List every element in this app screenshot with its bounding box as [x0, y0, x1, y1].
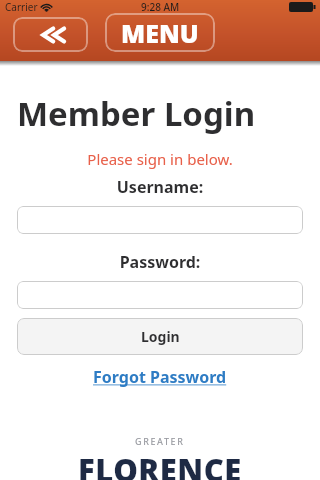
button[interactable]: Forgot Password [87, 364, 233, 390]
staticText: MENU [121, 16, 199, 50]
staticText: Login [141, 327, 180, 346]
staticText: GREATER [135, 435, 185, 447]
button[interactable]: Text field [17, 206, 303, 234]
button[interactable]: Text field [17, 281, 303, 309]
staticText: Username: [0, 176, 320, 198]
button[interactable]: Login [17, 318, 303, 355]
staticText: Password: [0, 251, 320, 273]
staticText: Member Login [17, 91, 256, 136]
staticText: Forgot Password [93, 366, 227, 388]
staticText: FLORENCE [78, 449, 242, 480]
staticText: Carrier [5, 0, 38, 14]
button[interactable]: MENU [105, 13, 215, 52]
button[interactable]: Back [13, 17, 88, 52]
staticText: 9:28 AM [141, 0, 180, 14]
staticText: Please sign in below. [0, 149, 320, 169]
